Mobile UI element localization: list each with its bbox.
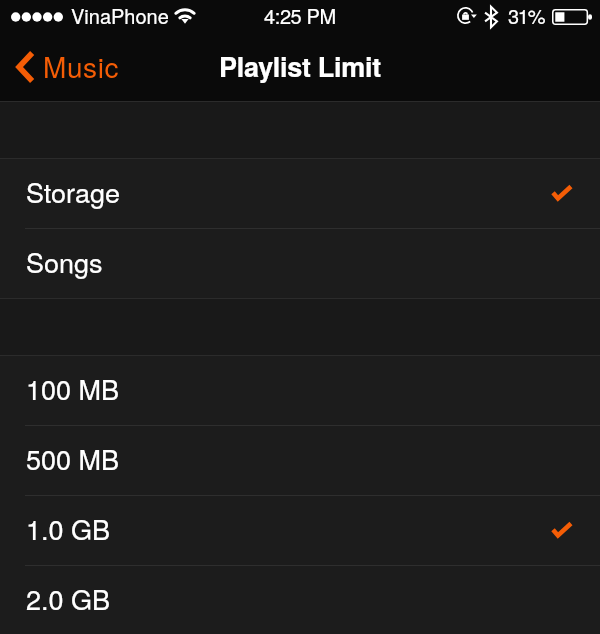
staticText: 500 MB — [26, 439, 120, 478]
button[interactable]: 100 MB — [0, 356, 600, 425]
button[interactable]: Back to Music — [0, 40, 132, 102]
other: Back to Music — [15, 49, 35, 85]
other: Selected — [551, 521, 573, 538]
button[interactable]: 2.0 GB — [0, 566, 600, 634]
staticText: 100 MB — [26, 369, 120, 408]
button[interactable]: 1.0 GB — [0, 496, 600, 565]
button[interactable]: Storage — [0, 159, 600, 228]
staticText: 1.0 GB — [26, 509, 111, 548]
other: Selected — [551, 184, 573, 201]
staticText: 2.0 GB — [26, 579, 111, 618]
staticText: Songs — [26, 242, 103, 281]
staticText: Storage — [26, 172, 121, 211]
staticText: 4:25 PM — [264, 1, 336, 30]
staticText: Music — [43, 46, 120, 86]
button[interactable]: Songs — [0, 229, 600, 298]
staticText: Playlist Limit — [219, 47, 381, 86]
staticText: VinaPhone — [71, 1, 169, 30]
staticText: 31% — [508, 1, 545, 30]
button[interactable]: 500 MB — [0, 426, 600, 495]
